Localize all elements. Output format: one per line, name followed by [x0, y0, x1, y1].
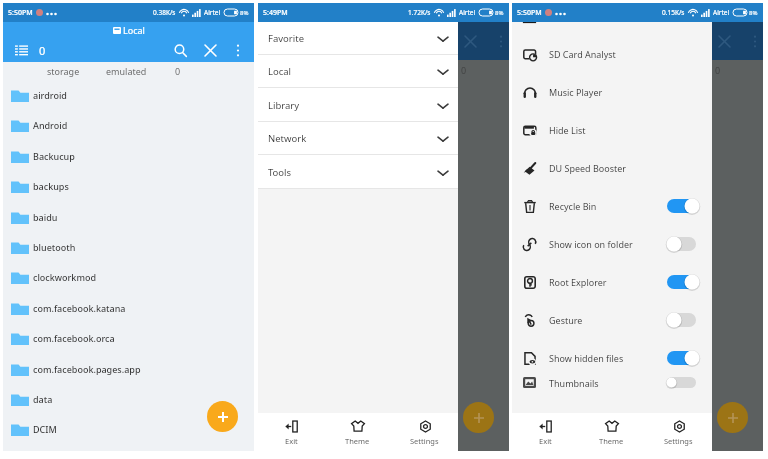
button[interactable]: Android [3, 110, 254, 140]
staticText: bluetooth [33, 241, 76, 253]
staticText: 0 [175, 65, 181, 77]
button[interactable]: data [3, 384, 254, 414]
button[interactable]: Show icon on folder [512, 225, 712, 263]
staticText: Airtel [713, 8, 730, 17]
button[interactable]: Gesture [512, 301, 712, 339]
staticText: baidu [33, 211, 58, 223]
staticText: Show icon on folder [549, 238, 633, 250]
staticText: Android [33, 119, 68, 131]
button[interactable]: Backucup [3, 141, 254, 171]
staticText: data [33, 393, 53, 405]
button[interactable]: baidu [3, 202, 254, 232]
staticText: Settings [664, 436, 693, 446]
button[interactable]: bluetooth [3, 232, 254, 262]
button[interactable]: Theme [578, 413, 645, 451]
button[interactable]: DCIM [3, 414, 254, 444]
staticText: Thumbnails [549, 377, 599, 388]
staticText: Root Explorer [549, 276, 607, 288]
button[interactable]: Show hidden files [512, 339, 712, 377]
button[interactable]: Menu [11, 40, 31, 60]
staticText: DCIM [33, 423, 57, 435]
staticText: Exit [285, 436, 298, 446]
button[interactable]: com.facebook.orca [3, 323, 254, 353]
staticText: 5:49PM [263, 8, 288, 18]
staticText: backups [33, 180, 69, 192]
button[interactable]: Theme [324, 413, 391, 451]
staticText: Recycle Bin [549, 200, 597, 212]
button[interactable]: Local [258, 55, 458, 88]
staticText: Theme [599, 436, 624, 446]
staticText: SD Card Analyst [549, 48, 616, 60]
staticText: Airtel [204, 8, 221, 17]
staticText: 0.38K/s [153, 8, 176, 17]
button[interactable]: Exit [512, 413, 578, 451]
staticText: com.facebook.orca [33, 332, 115, 344]
staticText: 0.15K/s [662, 8, 685, 17]
button[interactable]: DU Speed Booster [512, 149, 712, 187]
staticText: Hide List [549, 124, 586, 136]
staticText: 0 [461, 64, 467, 76]
button[interactable]: Favorite [258, 22, 458, 55]
staticText: Local [123, 24, 145, 36]
staticText: 8% [749, 9, 758, 17]
button[interactable]: More options [230, 42, 246, 58]
staticText: Theme [345, 436, 370, 446]
staticText: Favorite [268, 32, 304, 45]
staticText: Settings [410, 436, 439, 446]
staticText: storage [47, 65, 80, 77]
button[interactable]: Library [258, 89, 458, 122]
staticText: clockworkmod [33, 271, 97, 283]
staticText: 5:50PM [517, 8, 542, 18]
button[interactable]: Hide List [512, 111, 712, 149]
button[interactable]: com.facebook.katana [3, 293, 254, 323]
button[interactable]: Close [200, 40, 220, 60]
button[interactable]: SD Card Analyst [512, 35, 712, 73]
button[interactable]: Exit [258, 413, 324, 451]
staticText: Exit [539, 436, 552, 446]
button[interactable]: Recycle Bin [512, 187, 712, 225]
button[interactable]: Search [170, 40, 190, 60]
staticText: emulated [106, 65, 147, 77]
button[interactable]: Add [207, 401, 238, 432]
staticText: 0 [39, 43, 46, 58]
staticText: Tools [268, 166, 292, 179]
button[interactable]: App Manager [512, 22, 712, 35]
button[interactable]: clockworkmod [3, 262, 254, 292]
staticText: Network [268, 132, 307, 145]
staticText: 8% [240, 9, 249, 17]
staticText: Local [268, 65, 292, 78]
staticText: Gesture [549, 314, 583, 326]
staticText: Music Player [549, 86, 603, 98]
button[interactable]: Music Player [512, 73, 712, 111]
staticText: 1.72K/s [408, 8, 431, 17]
staticText: DU Speed Booster [549, 162, 627, 174]
staticText: com.facebook.katana [33, 302, 126, 314]
staticText: Show hidden files [549, 352, 624, 364]
button[interactable]: Thumbnails [512, 377, 712, 388]
button[interactable]: Settings [645, 413, 712, 451]
button[interactable]: Network [258, 122, 458, 155]
button[interactable]: Root Explorer [512, 263, 712, 301]
staticText: com.facebook.pages.app [33, 363, 141, 375]
staticText: Airtel [459, 8, 476, 17]
button[interactable]: com.facebook.pages.app [3, 354, 254, 384]
button[interactable]: airdroid [3, 80, 254, 110]
staticText: 0 [715, 64, 721, 76]
staticText: 5:50PM [8, 8, 33, 18]
staticText: Library [268, 99, 300, 112]
button[interactable]: Settings [391, 413, 458, 451]
staticText: Backucup [33, 150, 75, 162]
staticText: 8% [495, 9, 504, 17]
button[interactable]: backups [3, 171, 254, 201]
button[interactable]: Tools [258, 156, 458, 189]
staticText: airdroid [33, 89, 67, 101]
